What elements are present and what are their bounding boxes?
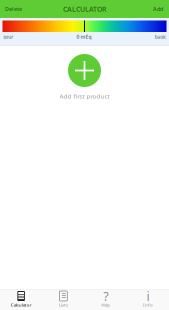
button[interactable]: Calculator — [0, 289, 42, 310]
staticText: Lists — [59, 302, 68, 308]
staticText: ? — [103, 287, 108, 305]
button[interactable]: Delete — [0, 0, 26, 18]
staticText: Add — [153, 5, 163, 13]
staticText: i — [146, 287, 149, 305]
button[interactable]: ? — [84, 289, 127, 310]
staticText: basic — [155, 33, 166, 40]
staticText: Calculator — [11, 302, 32, 308]
staticText: sour — [3, 33, 13, 40]
button[interactable]: Add first product — [68, 54, 101, 87]
staticText: 0 mEq — [76, 33, 91, 40]
button[interactable]: i — [127, 289, 169, 310]
button[interactable]: Lists — [42, 289, 84, 310]
staticText: Delete — [5, 5, 22, 13]
staticText: Help — [101, 302, 110, 308]
staticText: Add first product — [59, 92, 109, 100]
button[interactable]: Add — [149, 0, 169, 18]
staticText: CALCULATOR — [63, 4, 106, 14]
staticText: Info — [143, 302, 153, 308]
